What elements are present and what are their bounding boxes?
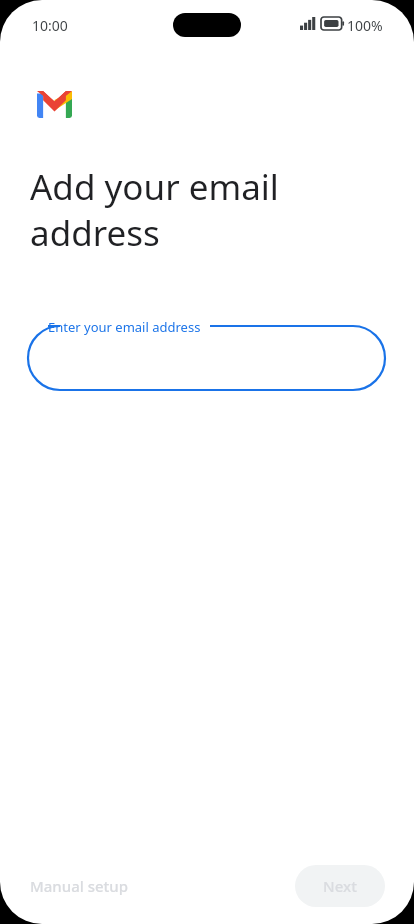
staticText: Add your email address — [30, 163, 279, 256]
staticText: Enter your email address — [48, 318, 201, 336]
staticText: Manual setup — [30, 876, 129, 896]
staticText: 100% — [347, 16, 383, 35]
button[interactable]: Manual setup — [18, 866, 141, 906]
staticText: Next — [323, 876, 357, 896]
button[interactable]: Enter your email address — [28, 318, 385, 390]
button[interactable]: Next — [295, 865, 385, 907]
staticText: 10:00 — [32, 16, 68, 35]
